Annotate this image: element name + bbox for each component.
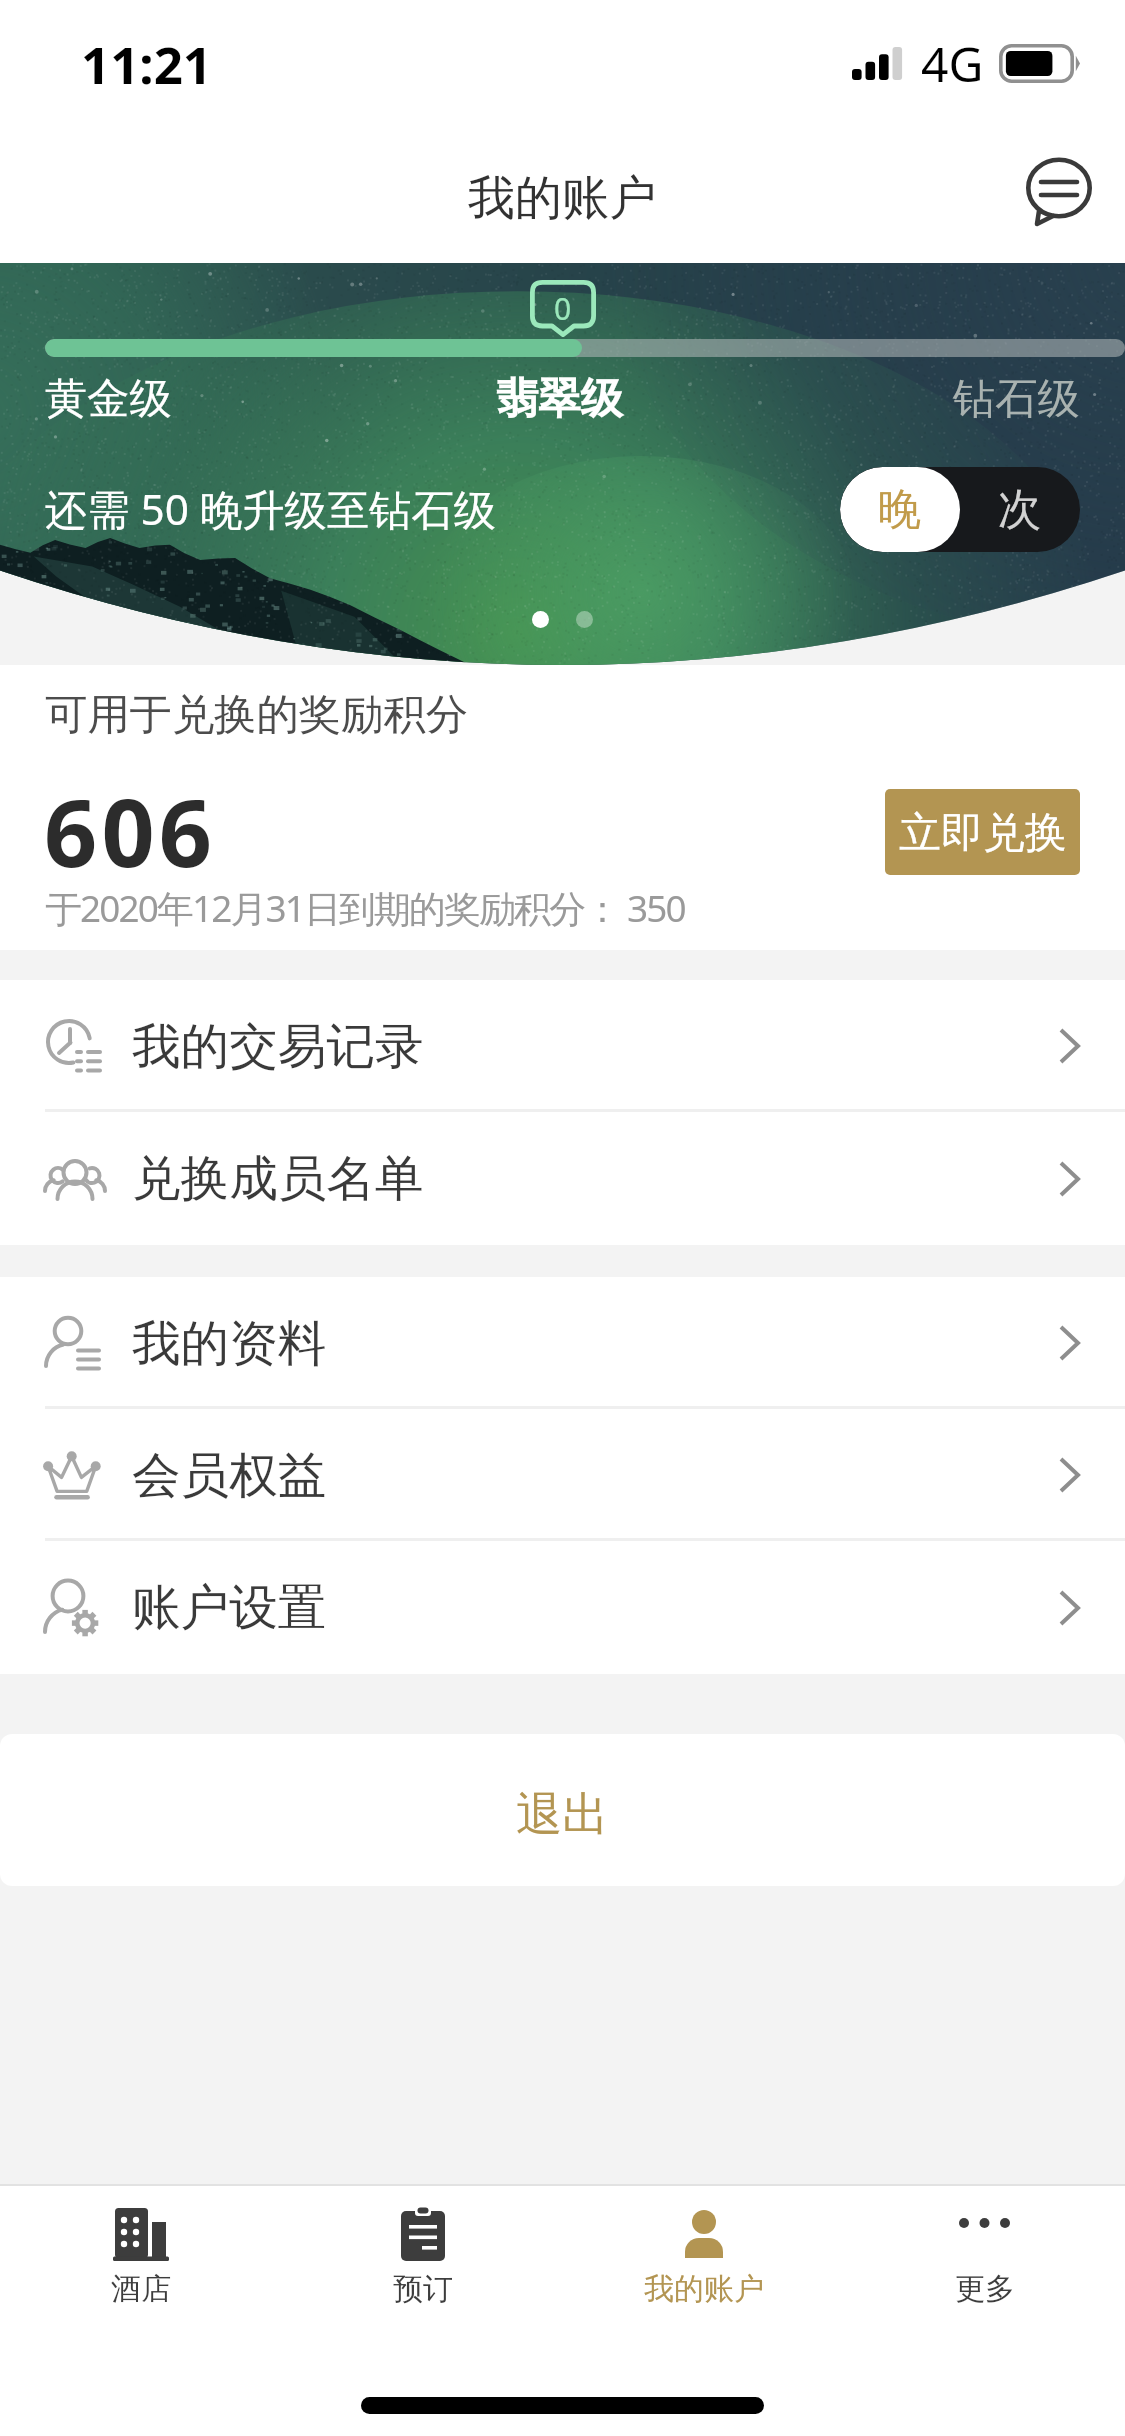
staticText: 晚 xyxy=(878,482,922,537)
staticText: 606 xyxy=(44,768,217,895)
staticText: 预订 xyxy=(393,2270,453,2308)
staticText: 立即兑换 xyxy=(899,807,1067,860)
button[interactable]: Messages xyxy=(1020,150,1098,231)
staticText: 0 xyxy=(554,288,572,329)
staticText: 退出 xyxy=(516,1786,609,1844)
button[interactable]: 次 xyxy=(960,467,1080,552)
staticText: 酒店 xyxy=(111,2270,171,2308)
button[interactable]: 立即兑换 xyxy=(885,789,1080,875)
button[interactable]: 兑换成员名单 xyxy=(0,1112,1125,1245)
staticText: 翡翠级 xyxy=(496,372,623,425)
button[interactable]: 更多 xyxy=(844,2186,1125,2336)
button[interactable]: 晚 xyxy=(840,467,960,552)
staticText: 我的交易记录 xyxy=(132,1016,424,1077)
staticText: 4G xyxy=(921,31,984,96)
button[interactable]: 预订 xyxy=(282,2186,563,2336)
button[interactable]: 酒店 xyxy=(0,2186,282,2336)
button[interactable]: 退出 xyxy=(0,1734,1125,1886)
staticText: 会员权益 xyxy=(132,1445,327,1506)
staticText: 钻石级 xyxy=(953,372,1080,425)
button[interactable]: 我的账户 xyxy=(563,2186,844,2336)
staticText: 我的账户 xyxy=(468,169,657,228)
button[interactable]: 我的交易记录 xyxy=(0,980,1125,1112)
staticText: 更多 xyxy=(955,2270,1015,2308)
staticText: 还需 50 晚升级至钻石级 xyxy=(45,480,497,538)
staticText: 我的账户 xyxy=(644,2270,764,2308)
staticText: 我的资料 xyxy=(132,1313,327,1374)
staticText: 于2020年12月31日到期的奖励积分： 350 xyxy=(45,883,685,933)
button[interactable]: 账户设置 xyxy=(0,1541,1125,1674)
staticText: 兑换成员名单 xyxy=(132,1148,424,1209)
staticText: 次 xyxy=(998,482,1042,537)
button[interactable]: 会员权益 xyxy=(0,1409,1125,1541)
staticText: 11:21 xyxy=(81,29,213,98)
staticText: 可用于兑换的奖励积分 xyxy=(45,688,468,741)
staticText: 账户设置 xyxy=(132,1577,327,1638)
staticText: 黄金级 xyxy=(45,372,172,425)
button[interactable]: 我的资料 xyxy=(0,1277,1125,1409)
